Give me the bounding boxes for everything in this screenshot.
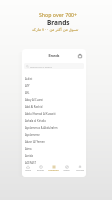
staticText: Ayolamerse xyxy=(25,133,40,137)
staticText: Offers xyxy=(63,169,70,172)
button[interactable]: Ayolamerse xyxy=(25,131,83,138)
button[interactable]: Abay Al Cuarzi xyxy=(25,96,83,103)
button[interactable]: Abdul Hamad Al Kuwaiti xyxy=(25,110,83,117)
staticText: Akzor 'Al Yemen xyxy=(25,140,45,144)
staticText: Brands xyxy=(47,18,70,27)
button[interactable]: Ashala al Kirtalia xyxy=(25,117,83,124)
staticText: AYL xyxy=(25,91,30,95)
staticText: Acrida xyxy=(25,154,33,158)
button[interactable]: Acrida xyxy=(25,152,83,159)
staticText: Account xyxy=(76,169,84,172)
button[interactable]: Categories xyxy=(47,165,60,172)
staticText: ACEFAST xyxy=(25,161,36,165)
staticText: Abdul Hamad Al Kuwaiti xyxy=(25,112,56,116)
button[interactable]: Abd Al Rashid xyxy=(25,103,83,110)
button[interactable]: Ayolamerus & Abdulrahm xyxy=(25,124,83,131)
staticText: Abd Al Rashid xyxy=(25,105,43,109)
staticText: Shop over 700+ xyxy=(39,11,78,18)
staticText: Brands xyxy=(31,54,77,58)
button[interactable]: Home xyxy=(22,165,34,172)
staticText: Abay Al Cuarzi xyxy=(25,98,43,102)
staticText: Brands xyxy=(37,169,44,172)
staticText: Ayolamerus & Abdulrahm xyxy=(25,126,58,130)
staticText: Ashala al Kirtalia xyxy=(25,119,46,123)
button[interactable]: Cart xyxy=(77,53,83,59)
staticText: ATY xyxy=(25,84,30,88)
button[interactable]: Aima xyxy=(25,145,83,152)
button[interactable]: Search for a brand xyxy=(24,63,84,69)
button[interactable]: Brands xyxy=(34,165,47,172)
button[interactable]: Account xyxy=(73,165,86,172)
button[interactable]: ATY xyxy=(25,82,83,89)
button[interactable]: Offers xyxy=(60,165,73,172)
button[interactable]: AYL xyxy=(25,89,83,96)
staticText: Home xyxy=(25,169,31,172)
button[interactable]: A-dist xyxy=(25,75,83,82)
button[interactable]: Akzor 'Al Yemen xyxy=(25,138,83,145)
staticText: تسوق من أكثر من ٧٠٠ ماركة xyxy=(32,27,79,32)
staticText: Aima xyxy=(25,147,32,151)
staticText: Search for a brand xyxy=(30,65,52,68)
staticText: Categories xyxy=(48,169,59,172)
staticText: A-dist xyxy=(25,77,33,81)
button[interactable]: ACEFAST xyxy=(25,159,83,166)
